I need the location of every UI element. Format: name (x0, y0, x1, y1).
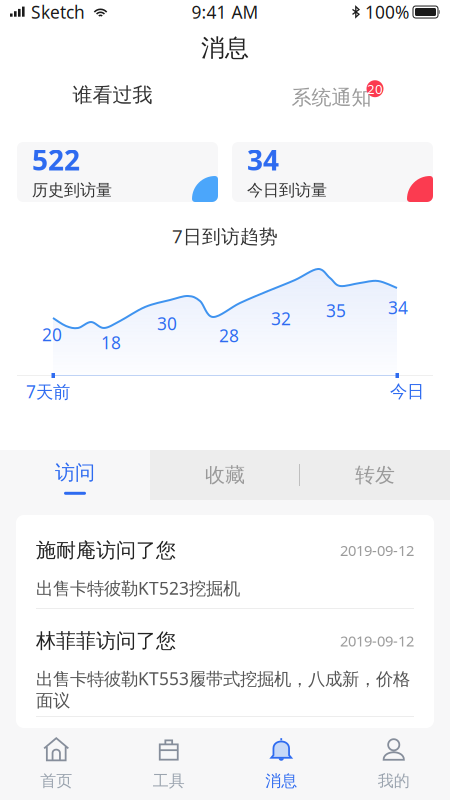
staticText: 18 (101, 331, 121, 354)
staticText: 历史到访量 (32, 180, 112, 200)
staticText: 7日到访趋势 (172, 224, 278, 248)
button[interactable]: 转发 (300, 450, 450, 500)
button[interactable]: 我的 (337, 725, 450, 800)
staticText: 收藏 (205, 463, 245, 487)
staticText: 28 (219, 324, 239, 347)
button[interactable]: 收藏 (150, 450, 300, 500)
staticText: Sketch (31, 0, 85, 23)
staticText: 今日到访量 (247, 180, 327, 200)
button[interactable]: 林菲菲访问了您 (16, 609, 434, 716)
staticText: 20 (42, 323, 62, 346)
staticText: 林菲菲访问了您 (36, 629, 176, 653)
staticText: 首页 (40, 771, 72, 791)
button[interactable]: 谁看过我 (0, 72, 225, 118)
button[interactable]: 522 (17, 142, 218, 202)
staticText: 20 (367, 80, 383, 98)
staticText: 我的 (378, 771, 410, 791)
staticText: 转发 (355, 463, 395, 487)
staticText: 消息 (201, 33, 249, 63)
button[interactable]: 34 (232, 142, 433, 202)
staticText: 工具 (153, 771, 185, 791)
staticText: 9:41 AM (191, 0, 258, 23)
staticText: 出售卡特彼勒KT553履带式挖掘机，八成新，价格面议 (36, 667, 410, 711)
staticText: 32 (271, 307, 291, 330)
staticText: 35 (326, 299, 346, 322)
button[interactable]: 系统通知 (225, 72, 450, 118)
button[interactable]: 工具 (112, 725, 225, 800)
staticText: 访问 (55, 460, 95, 485)
button[interactable]: 首页 (0, 725, 112, 800)
staticText: 施耐庵访问了您 (36, 538, 176, 563)
button[interactable]: 访问 (0, 450, 150, 500)
staticText: 34 (247, 141, 279, 178)
staticText: 100% (365, 0, 409, 23)
staticText: 系统通知 (291, 85, 371, 110)
staticText: 34 (388, 296, 408, 319)
staticText: 7天前 (26, 380, 70, 403)
staticText: 消息 (265, 771, 297, 791)
staticText: 今日 (390, 381, 424, 402)
staticText: 出售卡特彼勒KT523挖掘机 (36, 577, 240, 600)
staticText: 30 (157, 312, 177, 335)
button[interactable]: 消息 (225, 725, 337, 800)
staticText: 2019-09-12 (340, 540, 414, 560)
staticText: 谁看过我 (72, 83, 152, 107)
button[interactable]: 施耐庵访问了您 (16, 515, 434, 608)
staticText: 522 (32, 141, 80, 178)
staticText: 2019-09-12 (340, 631, 414, 651)
